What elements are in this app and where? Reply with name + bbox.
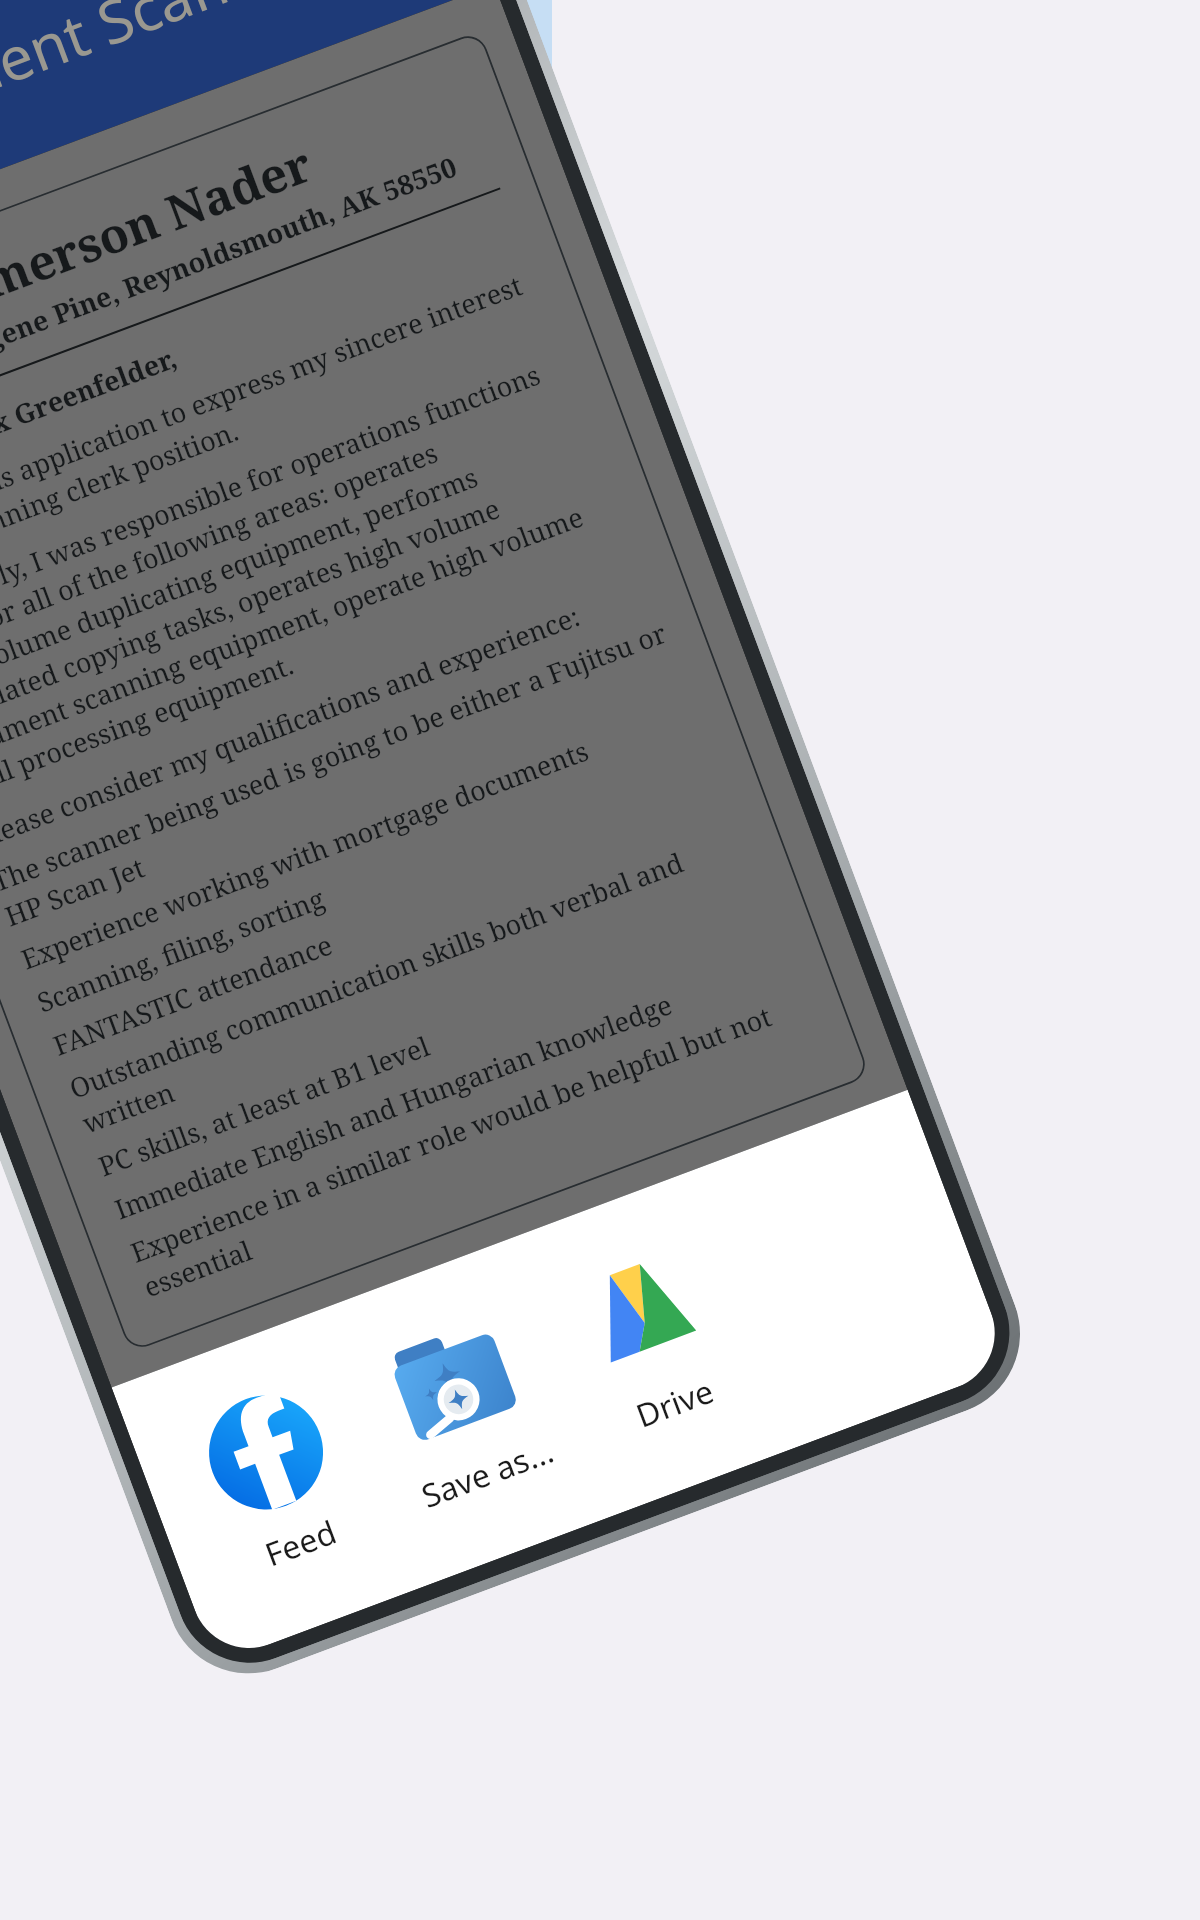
- staticText: Experience working with mortgage documen…: [16, 732, 593, 977]
- button[interactable]: Drive: [526, 1220, 777, 1463]
- staticText: Dear Lennox Greenfelder,: [0, 339, 182, 498]
- staticText: The scanner being used is going to be ei…: [0, 614, 685, 934]
- staticText: Document Scanner: [0, 0, 329, 172]
- staticText: FANTASTIC attendance: [48, 926, 337, 1064]
- button[interactable]: Share: [337, 0, 471, 21]
- staticText: 40655 Georgene Pine, Reynoldsmouth, AK 5…: [0, 136, 494, 422]
- staticText: Please consider my qualifications and ex…: [0, 597, 585, 857]
- staticText: Outstanding communication skills both ve…: [64, 821, 762, 1141]
- staticText: I submit this application to express my …: [0, 261, 553, 582]
- staticText: Scanning, filing, sorting: [32, 879, 329, 1020]
- staticText: Immediate English and Hungarian knowledg…: [109, 985, 678, 1227]
- staticText: Drive: [629, 1369, 720, 1438]
- staticText: Save as...: [415, 1428, 560, 1518]
- staticText: Emerson Nader: [0, 71, 479, 384]
- staticText: high volume duplicating equipment, perfo…: [0, 415, 611, 736]
- staticText: Previously, I was responsible for operat…: [0, 346, 585, 666]
- staticText: document scanning equipment, operate hig…: [0, 484, 637, 805]
- button[interactable]: Save as...: [338, 1290, 590, 1533]
- staticText: Experience in a similar role would be he…: [125, 984, 824, 1305]
- staticText: PC skills, at least at B1 level: [93, 1027, 435, 1184]
- staticText: Feed: [259, 1510, 342, 1576]
- button[interactable]: Feed: [151, 1360, 403, 1603]
